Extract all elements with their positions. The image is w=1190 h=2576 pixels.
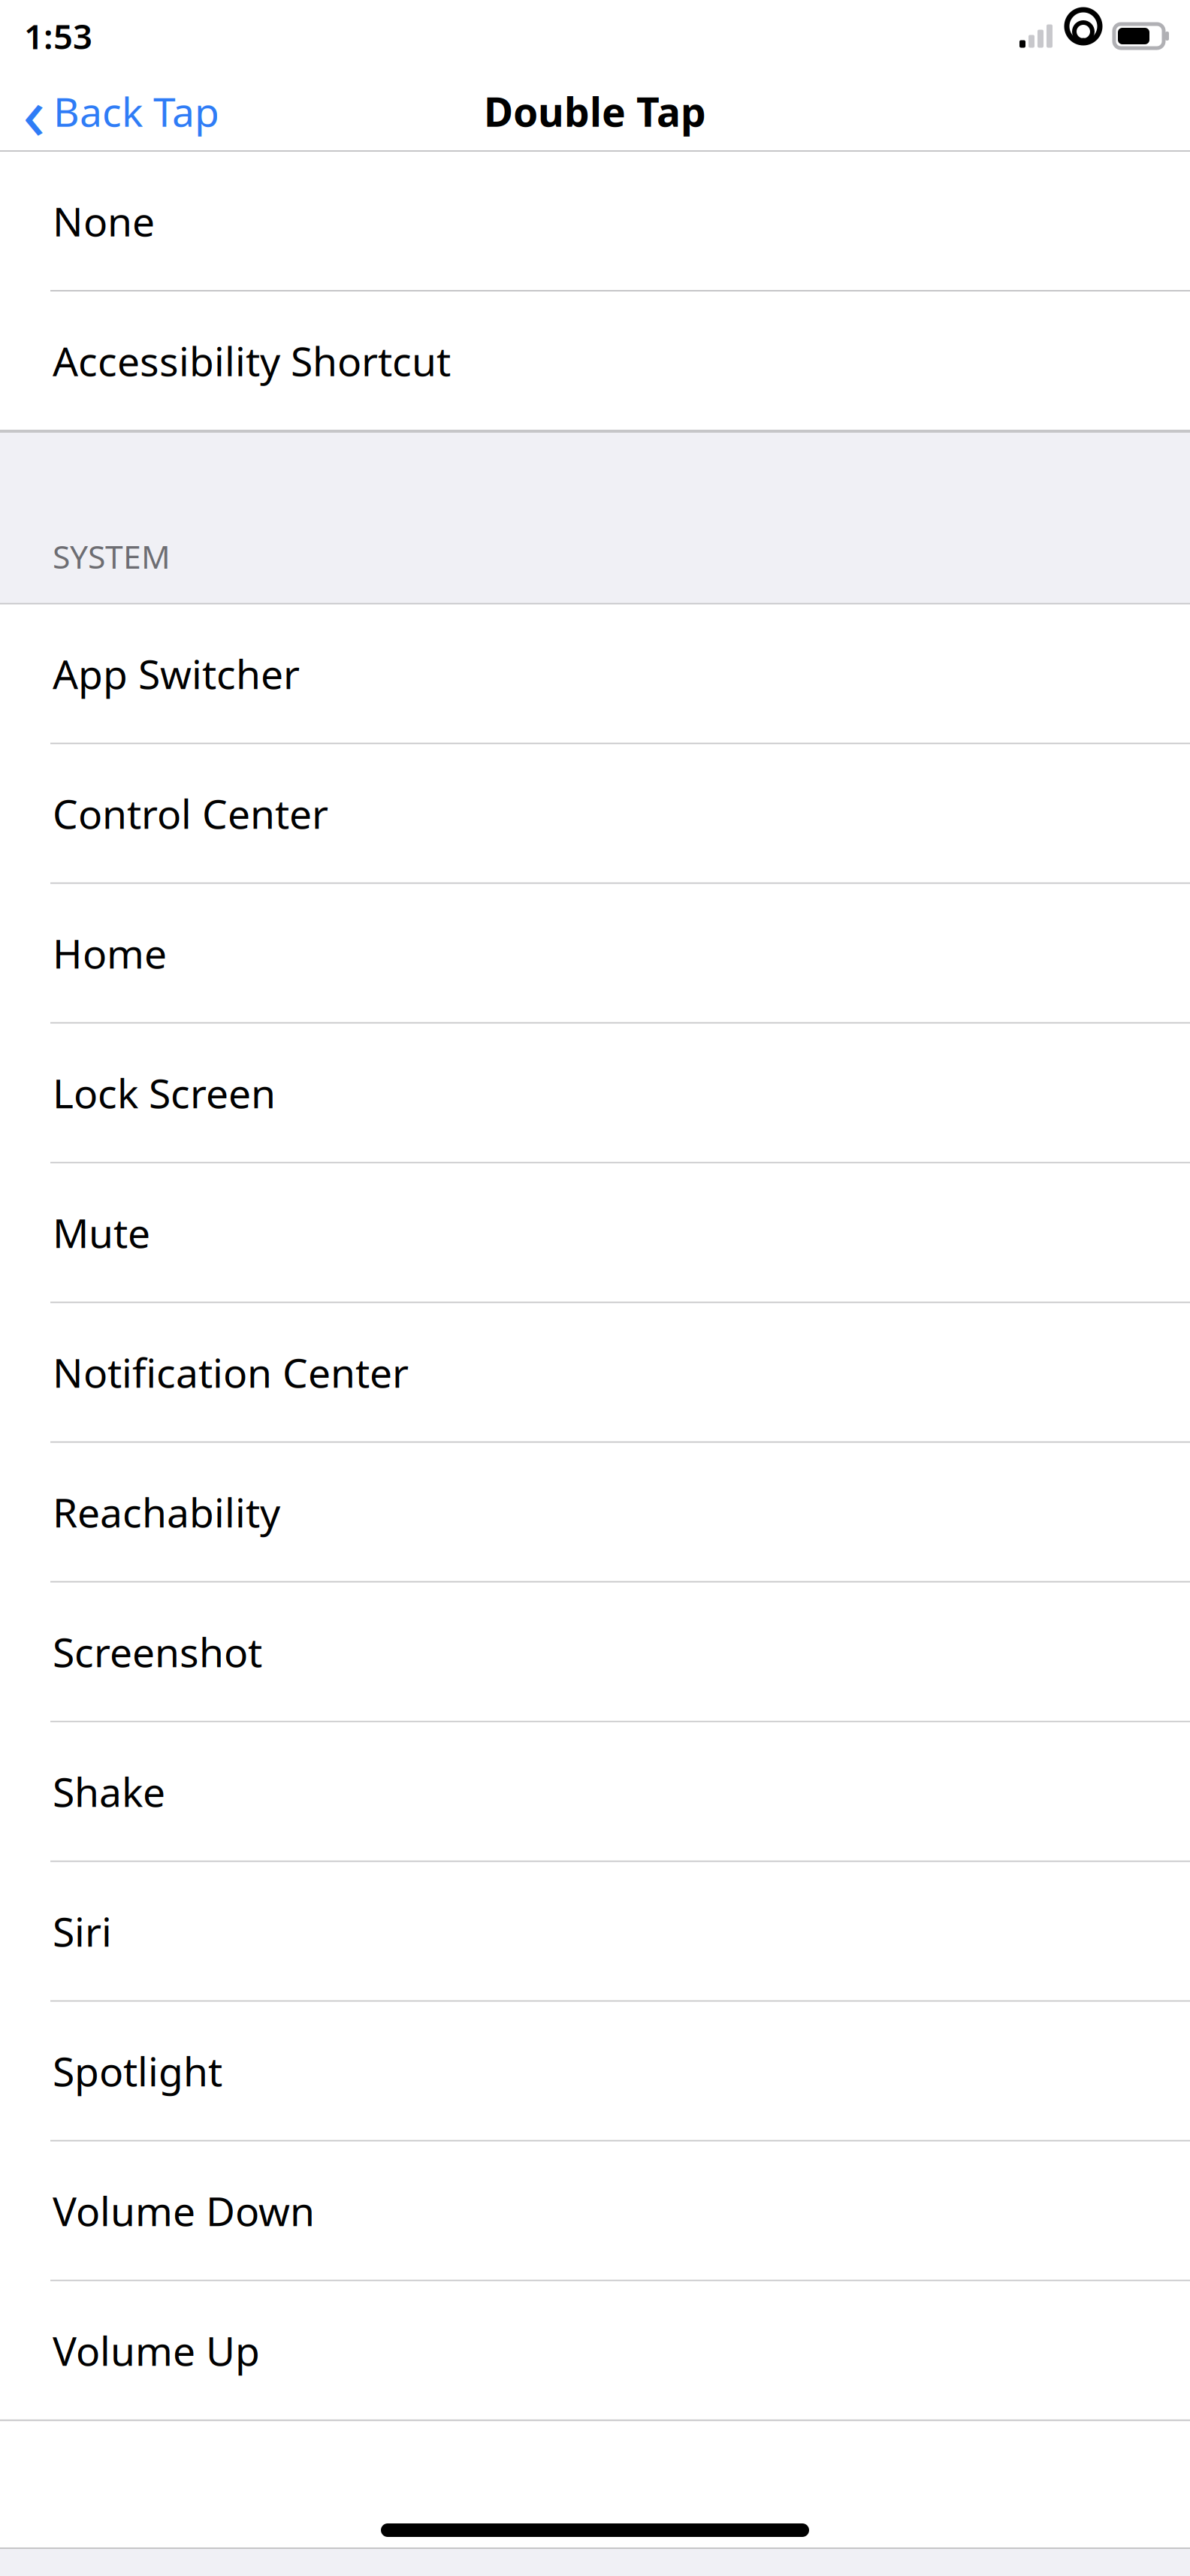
- button[interactable]: Accessibility Shortcut: [0, 291, 1190, 431]
- button[interactable]: Lock Screen: [0, 1024, 1190, 1163]
- staticText: Shake: [53, 1765, 165, 1818]
- button[interactable]: Control Center: [0, 744, 1190, 884]
- staticText: Double Tap: [484, 85, 706, 138]
- staticText: Reachability: [53, 1485, 280, 1539]
- button[interactable]: Notification Center: [0, 1303, 1190, 1443]
- staticText: Control Center: [53, 787, 328, 840]
- button[interactable]: Spotlight: [0, 2002, 1190, 2142]
- staticText: 1:53: [24, 13, 92, 59]
- staticText: Back Tap: [53, 85, 219, 138]
- button[interactable]: App Switcher: [0, 605, 1190, 744]
- staticText: Volume Down: [53, 2184, 315, 2237]
- staticText: Volume Up: [53, 2324, 260, 2377]
- staticText: Spotlight: [53, 2044, 222, 2097]
- staticText: Mute: [53, 1206, 150, 1259]
- button[interactable]: Shake: [0, 1722, 1190, 1862]
- staticText: Lock Screen: [53, 1066, 276, 1119]
- button[interactable]: Reachability: [0, 1443, 1190, 1583]
- button[interactable]: Screenshot: [0, 1583, 1190, 1722]
- button[interactable]: Volume Up: [0, 2281, 1190, 2421]
- staticText: Siri: [53, 1905, 112, 1958]
- staticText: SYSTEM: [53, 535, 171, 577]
- button[interactable]: Home: [0, 884, 1190, 1024]
- staticText: App Switcher: [53, 647, 300, 700]
- button[interactable]: ‹: [0, 74, 231, 149]
- staticText: Screenshot: [53, 1625, 262, 1678]
- button[interactable]: None: [0, 152, 1190, 291]
- button[interactable]: Volume Down: [0, 2142, 1190, 2281]
- staticText: ‹: [23, 62, 46, 160]
- staticText: Accessibility Shortcut: [53, 334, 451, 387]
- staticText: None: [53, 194, 155, 247]
- staticText: Home: [53, 926, 167, 980]
- button[interactable]: Mute: [0, 1163, 1190, 1303]
- button[interactable]: Siri: [0, 1862, 1190, 2002]
- staticText: Notification Center: [53, 1346, 409, 1399]
